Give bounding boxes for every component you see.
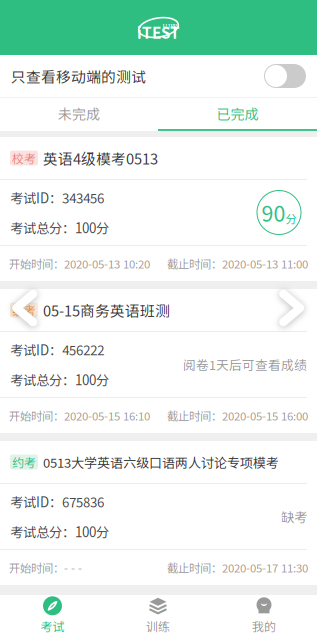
staticText: 截止时间：2020-05-15 16:00 xyxy=(167,407,308,424)
staticText: 05-15商务英语班测 xyxy=(43,299,170,321)
staticText: 截止时间：2020-05-13 11:00 xyxy=(167,255,308,272)
staticText: 开始时间：2020-05-13 10:20 xyxy=(9,255,150,272)
staticText: 开始时间：2020-05-15 16:10 xyxy=(9,407,150,424)
button[interactable]: 训练 xyxy=(105,595,211,636)
staticText: 校考 xyxy=(12,149,36,167)
staticText: 已完成 xyxy=(216,103,258,124)
staticText: FLTRP xyxy=(162,22,176,29)
staticText: 截止时间：2020-05-17 11:30 xyxy=(167,559,308,576)
staticText: 阅卷1天后可查看成绩 xyxy=(183,355,307,374)
staticText: 考试 xyxy=(40,617,64,635)
staticText: iTEST xyxy=(137,21,180,43)
button[interactable]: 未完成 xyxy=(0,98,158,129)
staticText: 训练 xyxy=(146,617,170,635)
staticText: 我的 xyxy=(252,617,276,635)
staticText: 分 xyxy=(285,210,296,226)
button[interactable]: 已完成 xyxy=(158,98,317,129)
button[interactable]: 只查看移动端的测试 xyxy=(264,64,306,88)
button[interactable]: 约考 xyxy=(0,441,317,585)
button[interactable]: 统考 xyxy=(0,289,317,433)
staticText: 0513大学英语六级口语两人讨论专项模考 xyxy=(43,452,279,471)
staticText: 考试总分：100分 xyxy=(10,370,109,389)
staticText: 英语4级模考0513 xyxy=(43,147,158,169)
staticText: 开始时间：- - - xyxy=(9,559,82,576)
button[interactable]: 我的 xyxy=(211,595,317,636)
staticText: 考试总分：100分 xyxy=(10,522,109,541)
staticText: 只查看移动端的测试 xyxy=(11,65,146,87)
staticText: 缺考 xyxy=(281,507,307,526)
staticText: 未完成 xyxy=(58,103,100,124)
staticText: 约考 xyxy=(12,453,36,471)
button[interactable]: 考试 xyxy=(0,595,105,636)
button[interactable]: 校考 xyxy=(0,137,317,281)
staticText: 考试ID：343456 xyxy=(10,188,104,207)
staticText: 考试总分：100分 xyxy=(10,218,109,237)
staticText: 考试ID：675836 xyxy=(10,492,104,511)
staticText: 考试ID：456222 xyxy=(10,340,104,359)
staticText: 90 xyxy=(261,197,285,228)
staticText: 统考 xyxy=(12,301,36,319)
